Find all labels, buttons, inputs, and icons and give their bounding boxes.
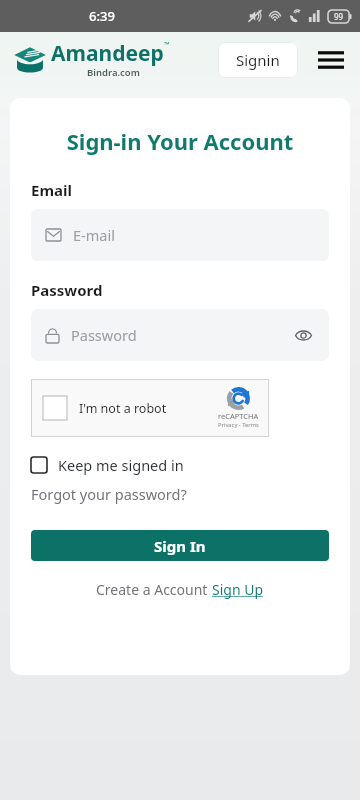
staticText: ™ (164, 40, 170, 50)
staticText: Privacy - Terms (218, 421, 259, 429)
staticText: reCAPTCHA (218, 411, 259, 421)
button[interactable]: Password (31, 309, 329, 361)
staticText: Amandeep (51, 39, 164, 68)
staticText: Email (31, 180, 72, 200)
staticText: E-mail (73, 225, 115, 245)
button[interactable]: Keep me signed in (31, 455, 184, 475)
button[interactable]: Show password (292, 324, 314, 346)
button[interactable]: Open menu (314, 43, 348, 77)
staticText: Keep me signed in (58, 455, 184, 475)
staticText: Password (31, 280, 103, 300)
staticText: Create a Account (96, 580, 212, 599)
button[interactable]: Sign Up (212, 580, 264, 599)
staticText: Signin (236, 50, 280, 70)
staticText: I'm not a robot (79, 400, 167, 417)
staticText: Password (71, 325, 137, 345)
staticText: Sign In (154, 536, 206, 556)
button[interactable]: Signin (218, 42, 298, 78)
button[interactable]: E-mail (31, 209, 329, 261)
button[interactable]: I'm not a robot (31, 379, 269, 437)
button[interactable]: Forgot your password? (31, 484, 187, 504)
staticText: 99 (334, 11, 344, 22)
button[interactable]: Sign In (31, 530, 329, 561)
staticText: Bindra.com (87, 66, 140, 79)
staticText: Sign-in Your Account (31, 126, 329, 156)
staticText: 6:39 (89, 7, 115, 25)
